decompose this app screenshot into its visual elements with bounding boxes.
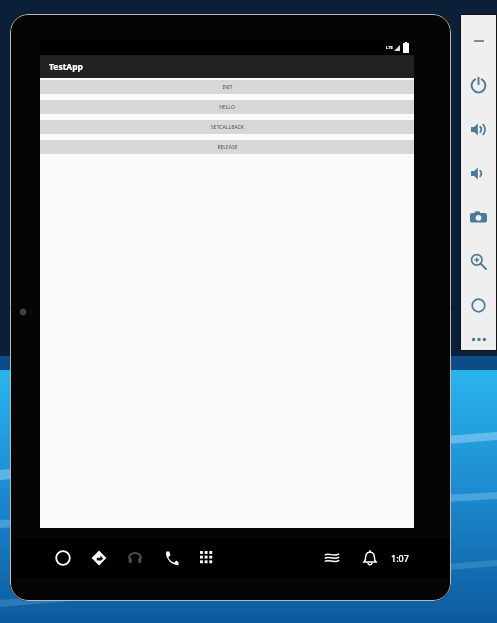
button[interactable]: Power xyxy=(460,63,497,107)
button[interactable]: HELLO xyxy=(40,100,414,114)
staticText: SETCALLBACK xyxy=(211,124,244,131)
button[interactable]: Home xyxy=(52,547,74,569)
button[interactable]: All apps xyxy=(196,547,218,569)
button[interactable]: INIT xyxy=(40,80,414,94)
button[interactable]: Volume up xyxy=(460,107,497,151)
button[interactable]: Notifications xyxy=(359,547,381,569)
button[interactable]: Volume down xyxy=(460,151,497,195)
button[interactable]: Take screenshot xyxy=(460,195,497,239)
button[interactable]: Minimize xyxy=(460,19,497,63)
button[interactable]: More options xyxy=(460,327,497,351)
button[interactable]: Zoom xyxy=(460,239,497,283)
button[interactable]: Rotate xyxy=(460,283,497,327)
button[interactable]: Phone xyxy=(160,547,182,569)
button[interactable]: Climate xyxy=(321,547,343,569)
button[interactable]: Media xyxy=(124,547,146,569)
button[interactable]: Navigation xyxy=(88,547,110,569)
button[interactable]: SETCALLBACK xyxy=(40,120,414,134)
staticText: RELEASE xyxy=(217,144,238,151)
staticText: HELLO xyxy=(219,104,235,111)
staticText: 1:07 xyxy=(391,552,409,564)
staticText: TestApp xyxy=(49,61,83,73)
staticText: INIT xyxy=(222,84,233,91)
staticText: LTE xyxy=(386,45,393,50)
button[interactable]: RELEASE xyxy=(40,140,414,154)
